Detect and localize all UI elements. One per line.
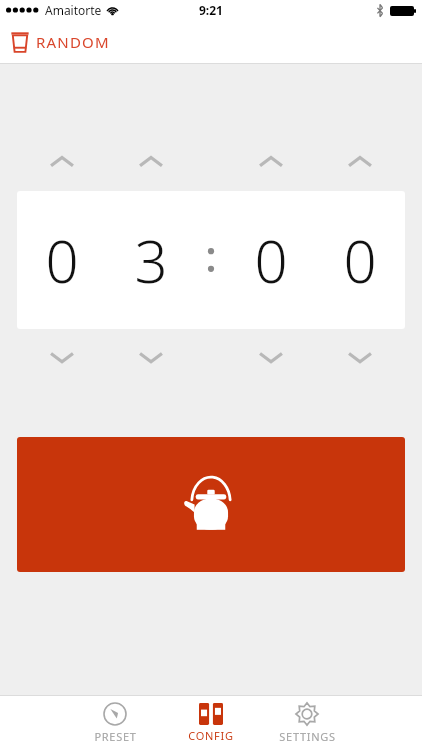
staticText: SETTINGS — [279, 729, 336, 744]
staticText: RANDOM — [36, 32, 110, 52]
button[interactable]: Decrease — [42, 347, 82, 369]
button[interactable]: Increase — [42, 150, 82, 172]
button[interactable]: Start brewing — [17, 437, 405, 572]
staticText: CONFIG — [188, 728, 234, 743]
staticText: 9:21 — [199, 2, 223, 18]
button[interactable]: Increase — [131, 150, 171, 172]
button[interactable]: Decrease — [340, 347, 380, 369]
button[interactable]: SETTINGS — [259, 696, 355, 750]
button[interactable]: Increase — [340, 150, 380, 172]
button[interactable]: PRESET — [67, 696, 163, 750]
button[interactable]: CONFIG — [163, 696, 259, 750]
button[interactable]: Increase — [251, 150, 291, 172]
staticText: Amaitorte — [45, 2, 102, 18]
staticText: 3 — [134, 221, 168, 300]
button[interactable]: Decrease — [131, 347, 171, 369]
staticText: PRESET — [94, 729, 137, 744]
staticText: 0 — [254, 221, 288, 300]
staticText: 0 — [343, 221, 377, 300]
button[interactable]: Decrease — [251, 347, 291, 369]
staticText: 0 — [45, 221, 79, 300]
